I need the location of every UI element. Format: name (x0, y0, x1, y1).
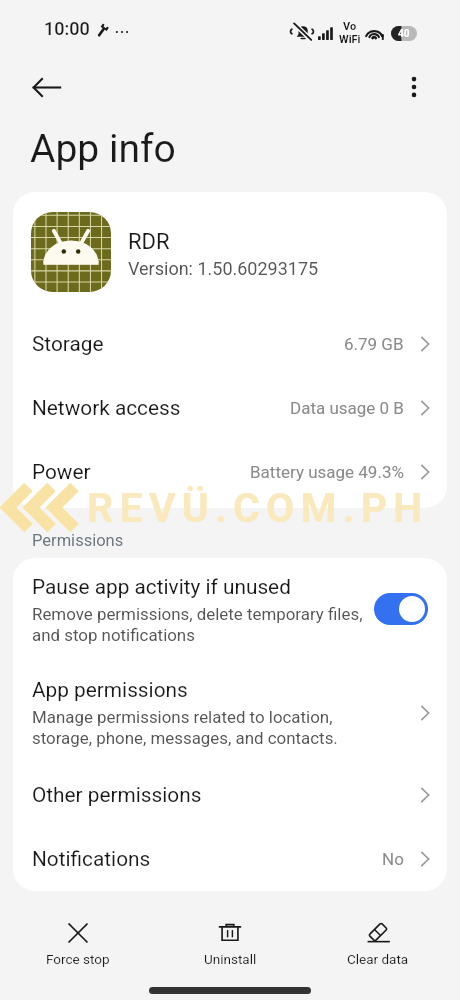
staticText: Storage (32, 332, 104, 356)
staticText: Data usage 0 B (290, 398, 404, 418)
button[interactable]: Uninstall (169, 921, 291, 967)
staticText: Version: 1.50.60293175 (128, 258, 319, 279)
staticText: Permissions (32, 531, 124, 550)
staticText: Remove permissions, delete temporary fil… (32, 604, 363, 646)
button[interactable]: Pause app activity if unused (13, 558, 447, 663)
button[interactable]: Power (13, 440, 447, 504)
button[interactable]: RDR (13, 192, 447, 312)
staticText: Manage permissions related to location, … (32, 707, 338, 749)
staticText: Pause app activity if unused (32, 575, 291, 599)
staticText: No (382, 849, 404, 869)
button[interactable]: More options (390, 63, 438, 111)
staticText: Network access (32, 396, 181, 420)
staticText: REVÜ.COM.PH (87, 484, 429, 532)
button[interactable]: Clear data (317, 921, 439, 967)
staticText: Clear data (347, 951, 409, 967)
button[interactable]: Notifications (13, 827, 447, 891)
button[interactable]: App permissions (13, 663, 447, 763)
button[interactable]: Network access (13, 376, 447, 440)
staticText: 40 (398, 28, 410, 40)
staticText: App permissions (32, 678, 188, 702)
staticText: Vo (343, 20, 357, 33)
staticText: RDR (128, 229, 170, 255)
staticText: Force stop (46, 951, 110, 967)
staticText: 6.79 GB (344, 334, 404, 354)
staticText: Power (32, 460, 91, 484)
button[interactable]: Storage (13, 312, 447, 376)
staticText: Battery usage 49.3% (250, 462, 404, 482)
button[interactable]: Back (22, 63, 70, 111)
staticText: Other permissions (32, 783, 202, 807)
button[interactable]: Other permissions (13, 763, 447, 827)
button[interactable]: Force stop (17, 921, 139, 967)
staticText: Uninstall (204, 951, 257, 967)
staticText: Notifications (32, 847, 151, 871)
staticText: 10:00 (44, 18, 90, 39)
staticText: WiFi (339, 33, 361, 46)
staticText: App info (30, 126, 176, 172)
button[interactable]: Pause app activity if unused toggle (374, 593, 428, 625)
